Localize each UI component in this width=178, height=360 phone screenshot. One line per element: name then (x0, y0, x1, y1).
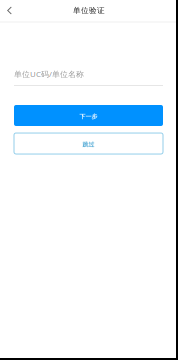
button[interactable]: 下一步 (14, 105, 163, 126)
staticText: 单位UC码/单位名称 (14, 69, 84, 79)
button[interactable]: Back (0, 0, 19, 21)
staticText: 单位验证 (73, 6, 105, 15)
staticText: 下一步 (79, 113, 97, 120)
staticText: 跳过 (82, 141, 94, 148)
button[interactable]: 跳过 (14, 133, 163, 154)
